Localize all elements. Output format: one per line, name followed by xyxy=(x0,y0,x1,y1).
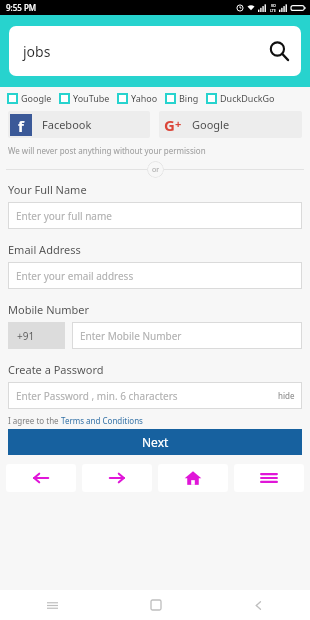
staticText: jobs xyxy=(23,42,257,61)
staticText: Enter Mobile Number xyxy=(80,329,182,343)
staticText: LTE xyxy=(270,8,276,13)
button[interactable]: Back xyxy=(6,464,76,492)
staticText: Enter Password , min. 6 characters xyxy=(16,389,278,403)
button[interactable]: Home xyxy=(158,464,228,492)
staticText: VO xyxy=(271,3,276,8)
button[interactable]: Enter your email address xyxy=(8,262,302,289)
button[interactable]: G xyxy=(159,111,302,138)
staticText: Create a Password xyxy=(8,362,104,377)
staticText: Enter your full name xyxy=(16,209,112,223)
staticText: Google xyxy=(21,92,52,104)
button[interactable]: Bing xyxy=(165,92,206,104)
staticText: Google xyxy=(192,117,302,132)
button[interactable]: Home xyxy=(104,590,207,620)
staticText: Your Full Name xyxy=(8,182,87,197)
staticText: Next xyxy=(142,434,169,450)
button[interactable]: YouTube xyxy=(59,92,117,104)
staticText: DuckDuckGo xyxy=(220,92,275,104)
staticText: +91 xyxy=(17,329,35,343)
staticText: Bing xyxy=(179,92,199,104)
button[interactable]: jobs xyxy=(9,26,301,76)
staticText: Email Address xyxy=(8,242,81,257)
staticText: + xyxy=(175,116,182,131)
staticText: hide xyxy=(278,390,295,401)
staticText: G xyxy=(164,115,175,135)
button[interactable]: Google xyxy=(7,92,59,104)
staticText: I agree to the xyxy=(8,415,61,426)
staticText: f xyxy=(18,116,24,136)
button[interactable]: Next xyxy=(8,429,302,455)
button[interactable]: Back xyxy=(207,590,310,620)
staticText: Facebook xyxy=(42,117,150,132)
staticText: 9:55 PM xyxy=(6,2,37,13)
staticText: Yahoo xyxy=(131,92,158,104)
button[interactable]: Search xyxy=(257,29,301,73)
button[interactable]: Recents xyxy=(0,590,104,620)
button[interactable]: hide xyxy=(278,390,302,401)
button[interactable]: Menu xyxy=(234,464,304,492)
button[interactable]: Yahoo xyxy=(117,92,165,104)
button[interactable]: I agree to the xyxy=(8,415,143,426)
staticText: Mobile Number xyxy=(8,302,90,317)
button[interactable]: +91 xyxy=(8,322,65,349)
button[interactable]: f xyxy=(8,111,150,138)
staticText: or xyxy=(152,165,160,175)
button[interactable]: Enter Mobile Number xyxy=(72,322,302,349)
staticText: Terms and Conditions xyxy=(61,415,143,426)
button[interactable]: DuckDuckGo xyxy=(206,92,282,104)
staticText: We will never post anything without your… xyxy=(8,145,206,156)
button[interactable]: Forward xyxy=(82,464,152,492)
staticText: YouTube xyxy=(73,92,110,104)
button[interactable]: Enter your full name xyxy=(8,202,302,229)
staticText: Enter your email address xyxy=(16,269,134,283)
button[interactable]: Enter Password , min. 6 characters xyxy=(8,382,302,409)
